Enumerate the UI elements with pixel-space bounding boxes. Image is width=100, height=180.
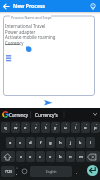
staticText: g xyxy=(49,140,52,146)
staticText: l xyxy=(90,140,92,146)
button[interactable]: x xyxy=(26,151,35,162)
staticText: Currency xyxy=(9,112,29,118)
button[interactable]: ?123 xyxy=(1,166,15,177)
button[interactable]: , xyxy=(14,166,20,178)
staticText: j xyxy=(70,140,72,146)
button[interactable]: b xyxy=(56,151,65,162)
staticText: r xyxy=(35,125,37,131)
staticText: 6 xyxy=(56,123,58,126)
staticText: 5 xyxy=(46,123,48,126)
staticText: h xyxy=(59,140,62,146)
staticText: z xyxy=(20,154,22,160)
button[interactable]: a xyxy=(6,137,15,148)
button[interactable]: u xyxy=(61,122,70,133)
button[interactable]: c xyxy=(36,151,45,162)
staticText: Currency xyxy=(5,40,24,46)
staticText: x xyxy=(29,154,32,160)
staticText: p xyxy=(94,125,97,131)
button[interactable]: z xyxy=(16,151,25,162)
button[interactable]: r xyxy=(31,122,40,133)
button[interactable]: Currency xyxy=(9,108,29,121)
button[interactable] xyxy=(42,98,54,107)
staticText: 1 xyxy=(6,123,8,126)
button[interactable]: . xyxy=(74,166,80,178)
staticText: Power adapter xyxy=(5,29,36,35)
button[interactable]: j xyxy=(66,137,75,148)
staticText: Activate mobile roaming xyxy=(5,34,56,40)
button[interactable]: e xyxy=(21,122,30,133)
staticText: . xyxy=(76,170,78,175)
staticText: 2 xyxy=(16,123,18,126)
staticText: 3 xyxy=(26,123,28,126)
staticText: Currency's xyxy=(35,112,58,118)
button[interactable]: d xyxy=(26,137,35,148)
button[interactable]: English xyxy=(30,166,72,177)
button[interactable]: Currency's xyxy=(32,108,60,121)
staticText: , xyxy=(16,170,18,175)
staticText: Process Name and Steps xyxy=(11,15,52,20)
staticText: c xyxy=(39,154,42,160)
staticText: b xyxy=(59,154,62,160)
staticText: w xyxy=(14,125,18,131)
staticText: t xyxy=(45,125,47,131)
button[interactable]: k xyxy=(76,137,85,148)
button[interactable]: t xyxy=(41,122,50,133)
button[interactable] xyxy=(87,165,98,176)
staticText: i xyxy=(75,125,77,131)
staticText: New Process xyxy=(13,3,46,10)
button[interactable]: p xyxy=(91,122,100,133)
staticText: s xyxy=(19,140,22,146)
staticText: u xyxy=(64,125,67,131)
staticText: International Travel xyxy=(5,23,46,29)
staticText: 7 xyxy=(66,123,68,126)
button[interactable] xyxy=(87,0,100,12)
button[interactable]: g xyxy=(46,137,55,148)
button[interactable] xyxy=(86,151,100,162)
staticText: 9 xyxy=(86,123,88,126)
button[interactable] xyxy=(0,0,12,12)
button[interactable] xyxy=(1,151,15,162)
staticText: 8 xyxy=(76,123,78,126)
staticText: k xyxy=(79,140,82,146)
staticText: English xyxy=(46,170,57,174)
button[interactable]: f xyxy=(36,137,45,148)
button[interactable]: w xyxy=(11,122,20,133)
staticText: o xyxy=(84,125,87,131)
staticText: f xyxy=(40,140,42,146)
button[interactable]: y xyxy=(51,122,60,133)
button[interactable]: i xyxy=(71,122,80,133)
staticText: 4 xyxy=(36,123,38,126)
staticText: q xyxy=(4,125,7,131)
button[interactable]: n xyxy=(66,151,75,162)
button[interactable]: l xyxy=(86,137,95,148)
button[interactable]: s xyxy=(16,137,25,148)
button[interactable]: h xyxy=(56,137,65,148)
staticText: a xyxy=(9,140,12,146)
button[interactable]: v xyxy=(46,151,55,162)
button[interactable]: m xyxy=(76,151,85,162)
staticText: y xyxy=(54,125,57,131)
staticText: ?123 xyxy=(5,170,12,174)
staticText: e xyxy=(24,125,27,131)
staticText: 0 xyxy=(96,123,98,126)
button[interactable]: o xyxy=(81,122,90,133)
staticText: v xyxy=(49,154,52,160)
button[interactable] xyxy=(3,16,94,96)
button[interactable]: q xyxy=(1,122,10,133)
staticText: d xyxy=(29,140,32,146)
staticText: m xyxy=(79,154,83,160)
staticText: n xyxy=(69,154,72,160)
